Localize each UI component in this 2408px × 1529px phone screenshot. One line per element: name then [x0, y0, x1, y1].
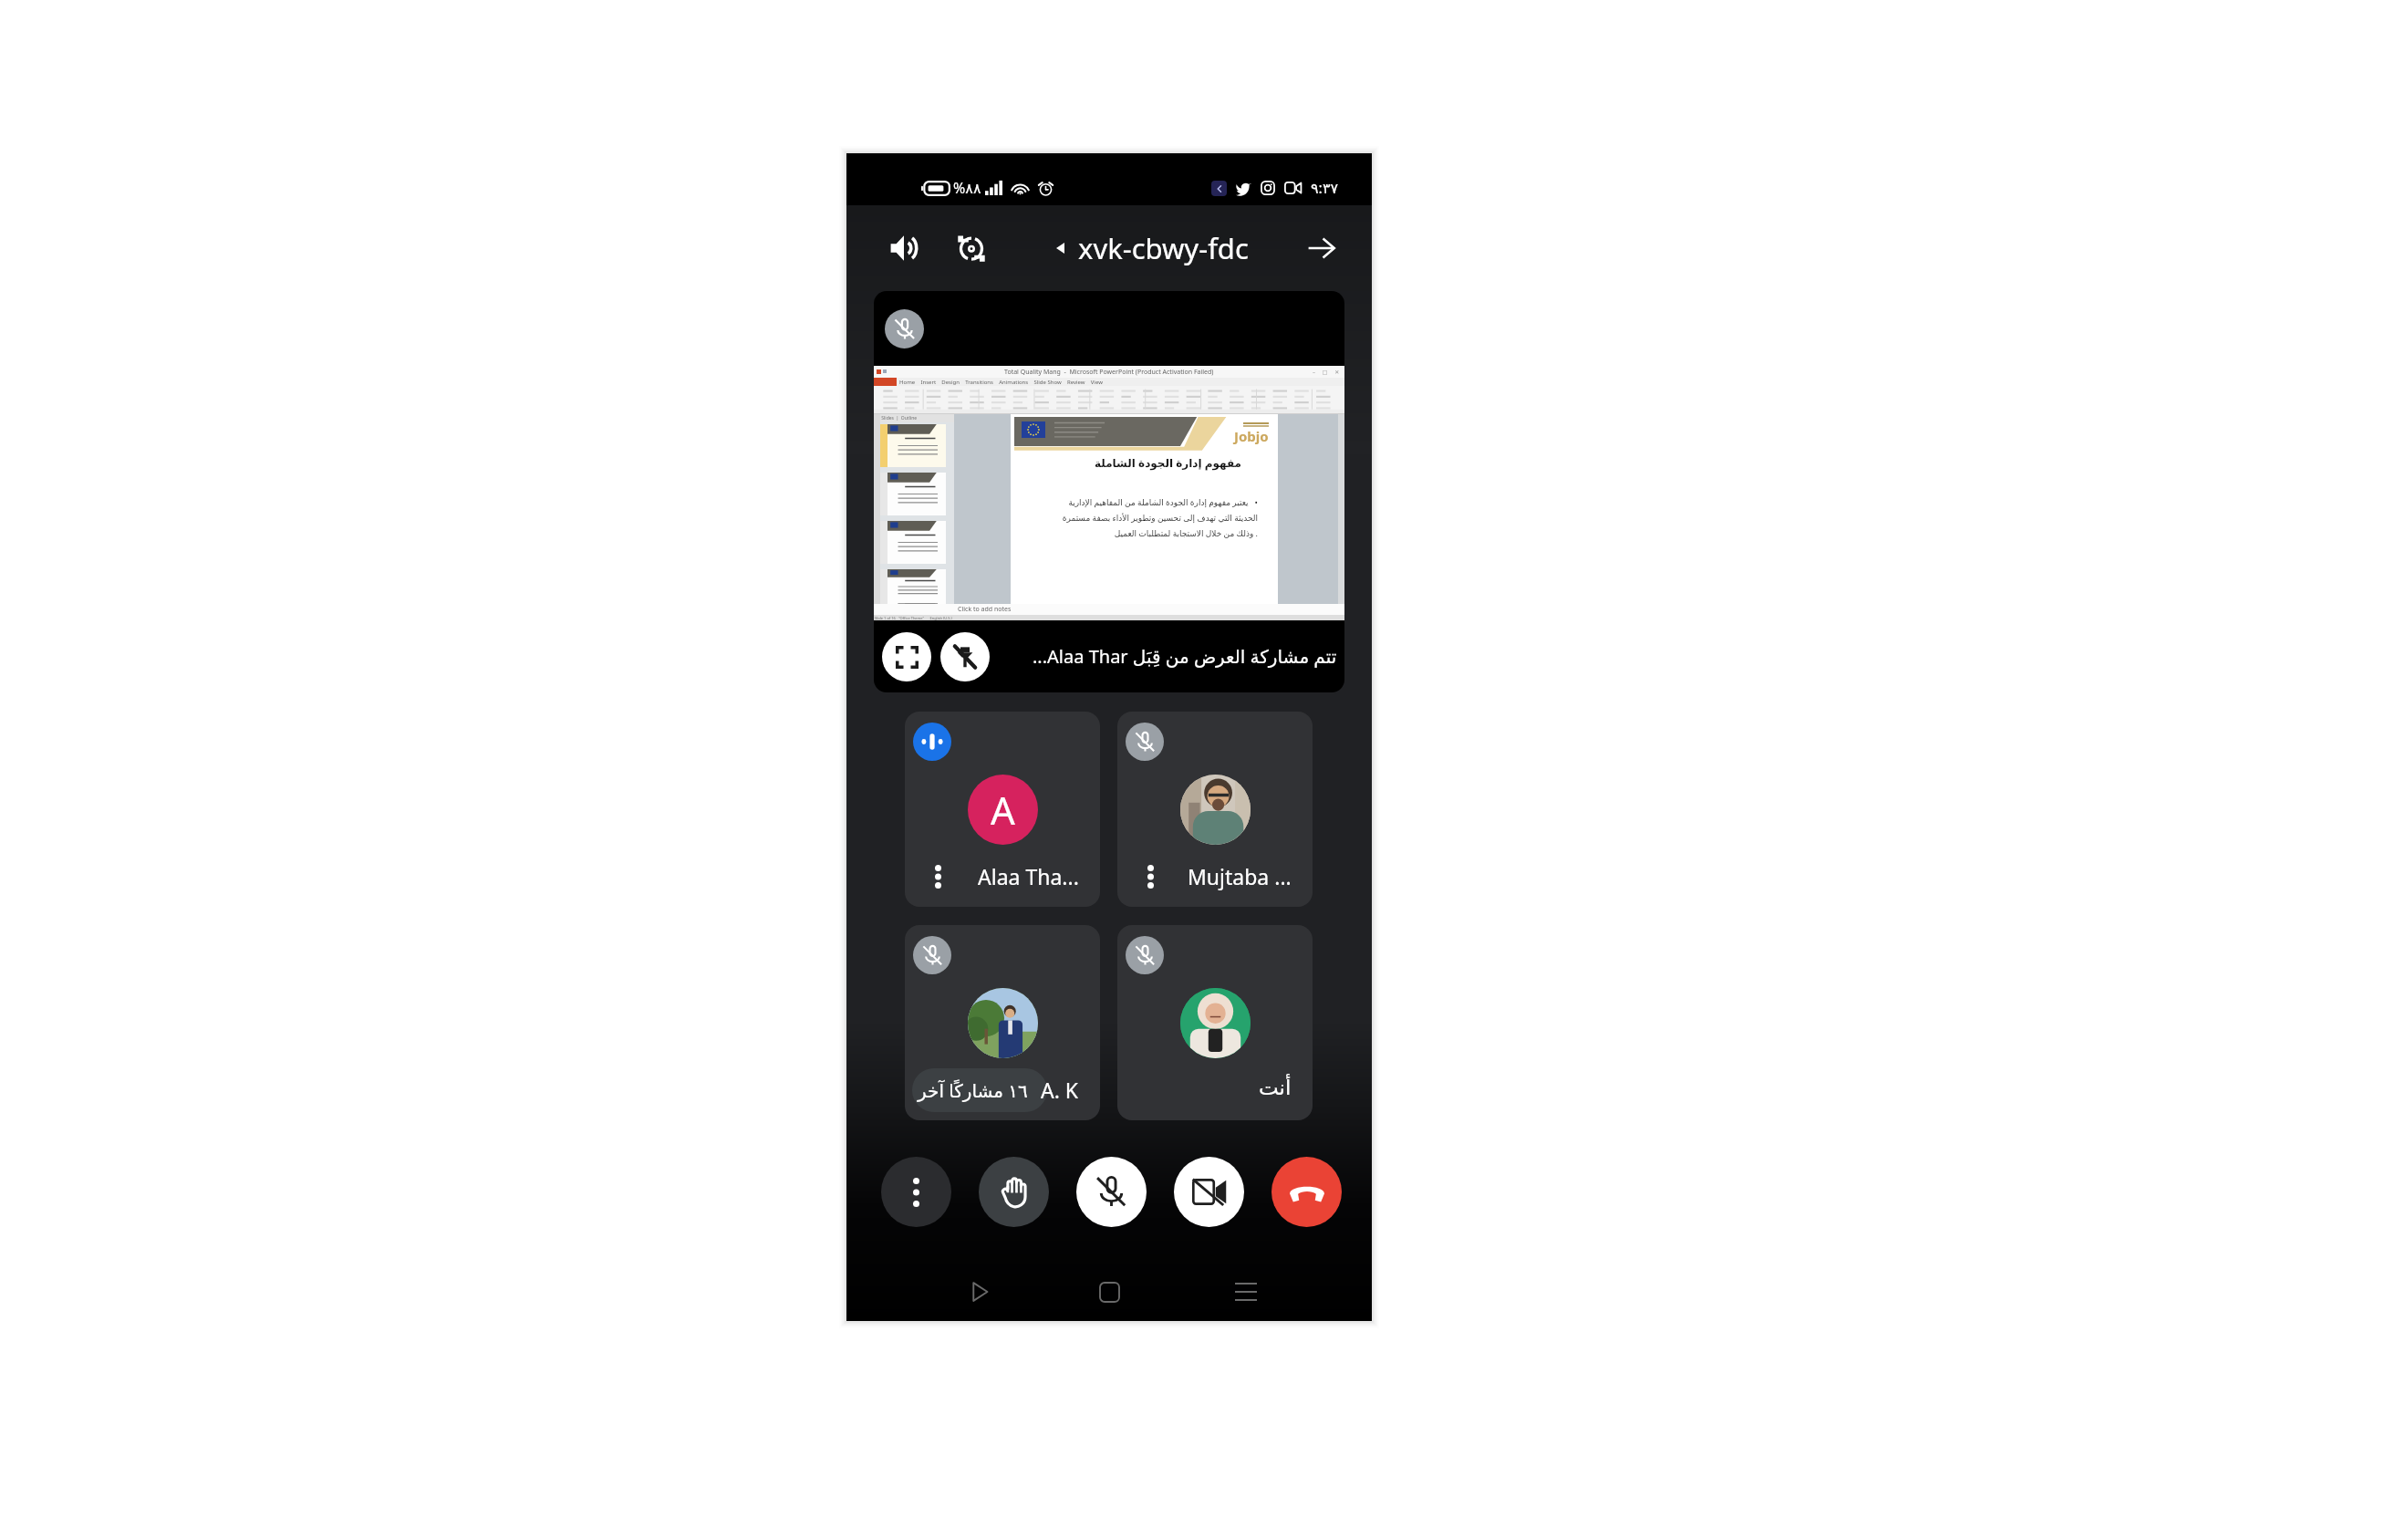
button[interactable]: Recents	[1222, 1268, 1270, 1316]
button[interactable]: Turn on camera	[1174, 1157, 1244, 1227]
staticText: Click to add notes	[958, 605, 1012, 614]
button[interactable]: Unpin	[940, 632, 990, 681]
button[interactable]: Muted	[1117, 925, 1313, 1120]
button[interactable]: Muted	[1126, 723, 1164, 761]
button[interactable]: Muted	[1126, 936, 1164, 974]
staticText: وذلك من خلال الاستجابة لمتطلبات العميل .	[1025, 527, 1258, 538]
button[interactable]: Speaking	[905, 712, 1100, 907]
button[interactable]: Muted	[905, 925, 1100, 1120]
staticText: Home Insert Design Transitions Animation…	[897, 379, 1103, 386]
button[interactable]: Raise hand	[979, 1157, 1049, 1227]
staticText: Slides | Outline	[880, 415, 918, 421]
staticText: Total Quality Mang - Microsoft PowerPoin…	[1004, 368, 1214, 377]
button[interactable]: More options	[881, 1157, 951, 1227]
button[interactable]: Back	[956, 1268, 1003, 1316]
staticText: ٩:٣٧	[1311, 178, 1339, 198]
button[interactable]: Switch camera	[950, 226, 993, 270]
staticText: الحديثة التي تهدف إلى تحسين وتطوير الأدا…	[1025, 512, 1258, 523]
button[interactable]: Speaker	[882, 226, 926, 270]
staticText: ‫مفهوم إدارة الجودة الشاملة‬	[1011, 455, 1241, 470]
staticText: xvk-cbwy-fdc	[1078, 229, 1249, 267]
button[interactable]: Muted	[913, 936, 951, 974]
staticText: Slide 1 of 16 "Office Theme" English (U.…	[874, 616, 952, 620]
staticText: يعتبر مفهوم إدارة الجودة الشاملة من المف…	[1025, 496, 1258, 507]
staticText: Mujtaba ...	[1188, 862, 1292, 890]
button[interactable]: Next	[1300, 226, 1344, 270]
staticText: أنت	[1259, 1076, 1292, 1100]
button[interactable]: Full screen	[882, 632, 931, 681]
staticText: A. K	[1041, 1076, 1079, 1104]
button[interactable]: Leave call	[1271, 1157, 1342, 1227]
staticText: – □ ✕	[1313, 369, 1340, 376]
button[interactable]: Presenter muted	[885, 309, 924, 348]
button[interactable]: Muted	[1117, 712, 1313, 907]
staticText: A	[991, 784, 1015, 836]
staticText: Alaa Tha...	[978, 862, 1079, 890]
staticText: %٨٨	[953, 178, 981, 198]
button[interactable]: Presenter muted	[874, 291, 1344, 692]
button[interactable]: Unmute	[1076, 1157, 1147, 1227]
staticText: ‫تتم مشاركة العرض من قِبَل Alaa Thar...‬	[1033, 644, 1337, 669]
button[interactable]: Speaking	[913, 723, 951, 761]
staticText: ‫١٦ مشاركًا آخر‬	[918, 1078, 1028, 1103]
staticText: Jobjo	[1234, 427, 1269, 445]
button[interactable]: Home	[1085, 1268, 1133, 1316]
